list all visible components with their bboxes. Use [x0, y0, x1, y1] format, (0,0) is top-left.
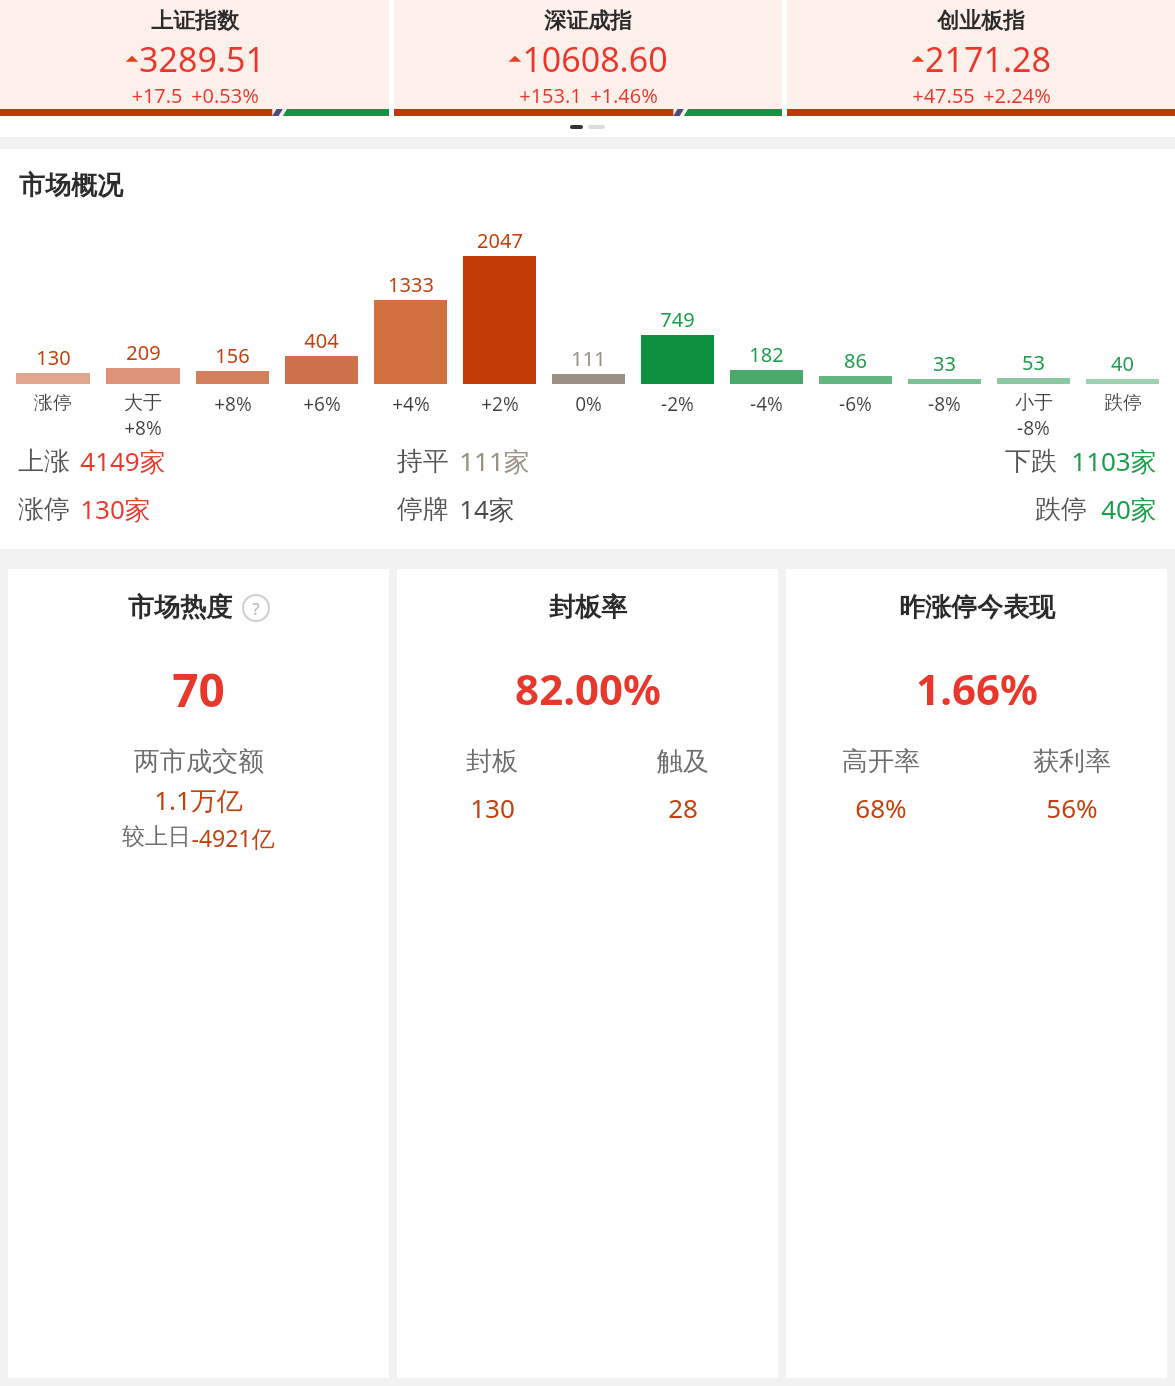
- staticText: 182: [749, 341, 784, 368]
- staticText: 68%: [855, 790, 907, 825]
- staticText: 130: [36, 344, 71, 371]
- staticText: +8%: [124, 415, 162, 439]
- staticText: -4%: [750, 391, 783, 417]
- button[interactable]: 昨涨停今表现: [786, 569, 1167, 1378]
- staticText: 上证指数: [151, 7, 239, 35]
- staticText: 大于: [124, 391, 162, 415]
- staticText: 28: [668, 790, 698, 825]
- button[interactable]: 创业板指: [787, 0, 1175, 116]
- staticText: 跌停: [1035, 493, 1087, 526]
- staticText: 较上日: [122, 822, 191, 851]
- staticText: 156: [215, 342, 250, 369]
- staticText: +8%: [214, 391, 252, 417]
- staticText: 两市成交额: [134, 745, 264, 778]
- staticText: ?: [252, 597, 260, 620]
- staticText: 涨停: [18, 493, 70, 526]
- staticText: 56%: [1046, 790, 1098, 825]
- staticText: 持平: [397, 445, 449, 478]
- staticText: +2.24%: [983, 82, 1051, 109]
- staticText: 市场热度: [128, 591, 232, 624]
- staticText: 下跌: [1005, 445, 1057, 478]
- staticText: 14家: [459, 491, 515, 527]
- staticText: +4%: [392, 391, 430, 417]
- staticText: 昨涨停今表现: [899, 591, 1055, 624]
- staticText: -8%: [1017, 415, 1050, 439]
- staticText: 上涨: [18, 445, 70, 478]
- button[interactable]: 市场热度: [8, 569, 389, 1378]
- staticText: +6%: [303, 391, 341, 417]
- staticText: +47.55: [912, 82, 975, 109]
- button[interactable]: 封板率: [397, 569, 778, 1378]
- button[interactable]: 帮助: [242, 594, 270, 622]
- staticText: 封板: [466, 745, 518, 778]
- staticText: 2171.28: [925, 36, 1051, 82]
- staticText: 停牌: [397, 493, 449, 526]
- staticText: 749: [660, 306, 695, 333]
- staticText: 涨停: [34, 391, 72, 415]
- staticText: 70: [172, 658, 225, 721]
- staticText: 获利率: [1033, 745, 1111, 778]
- button[interactable]: 上证指数: [0, 0, 389, 116]
- staticText: 130家: [80, 491, 151, 527]
- staticText: -4921亿: [191, 822, 275, 853]
- staticText: 86: [844, 347, 867, 374]
- staticText: 111: [571, 345, 606, 372]
- staticText: 3289.51: [139, 36, 265, 82]
- staticText: 小于: [1015, 391, 1053, 415]
- staticText: +17.5: [131, 82, 183, 109]
- staticText: 4149家: [80, 443, 166, 479]
- staticText: 1.1万亿: [154, 782, 243, 818]
- staticText: 1.66%: [916, 660, 1038, 717]
- staticText: 82.00%: [515, 660, 661, 717]
- staticText: 1103家: [1071, 443, 1157, 479]
- staticText: +153.1: [519, 82, 582, 109]
- staticText: 33: [933, 350, 956, 377]
- staticText: -2%: [661, 391, 694, 417]
- staticText: 10608.60: [522, 36, 668, 82]
- staticText: 触及: [657, 745, 709, 778]
- staticText: 2047: [477, 227, 523, 254]
- staticText: 0%: [575, 391, 602, 417]
- staticText: 209: [126, 339, 161, 366]
- staticText: 市场概况: [19, 169, 123, 202]
- staticText: 111家: [459, 443, 530, 479]
- button[interactable]: 深证成指: [394, 0, 782, 116]
- staticText: -8%: [928, 391, 961, 417]
- staticText: 130: [470, 790, 515, 825]
- staticText: 40: [1111, 350, 1134, 377]
- staticText: 40家: [1101, 491, 1157, 527]
- staticText: +2%: [481, 391, 519, 417]
- staticText: 封板率: [549, 591, 627, 624]
- staticText: 404: [304, 327, 339, 354]
- staticText: -6%: [839, 391, 872, 417]
- staticText: 高开率: [842, 745, 920, 778]
- staticText: +1.46%: [590, 82, 658, 109]
- staticText: 深证成指: [544, 7, 632, 35]
- staticText: 1333: [388, 271, 434, 298]
- staticText: 创业板指: [937, 7, 1025, 35]
- staticText: 跌停: [1104, 391, 1142, 415]
- staticText: 53: [1022, 349, 1045, 376]
- staticText: +0.53%: [191, 82, 259, 109]
